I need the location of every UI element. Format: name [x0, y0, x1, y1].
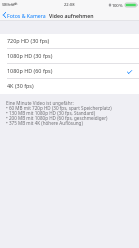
staticText: 22:08 — [64, 2, 75, 8]
button[interactable]: 1080p HD (60 fps) — [0, 64, 139, 79]
staticText: 1080p HD (30 fps) — [7, 52, 53, 59]
staticText: Fotos & Kamera — [7, 12, 46, 19]
button[interactable]: 4K (30 fps) — [0, 79, 139, 94]
button[interactable]: 1080p HD (30 fps) — [0, 49, 139, 64]
staticText: 720p HD (30 fps) — [7, 37, 50, 44]
other: Ausgewählt — [127, 70, 132, 74]
staticText: 1080p HD (60 fps) — [7, 67, 53, 74]
staticText: Eine Minute Video ist ungefähr: • 60 MB … — [6, 100, 112, 127]
staticText: 100 % — [112, 2, 123, 8]
button[interactable]: Fotos & Kamera — [0, 12, 49, 19]
staticText: Video aufnehmen — [49, 12, 94, 19]
button[interactable]: 720p HD (30 fps) — [0, 34, 139, 49]
staticText: SIM fehlt — [2, 2, 15, 7]
staticText: 4K (30 fps) — [7, 82, 34, 89]
